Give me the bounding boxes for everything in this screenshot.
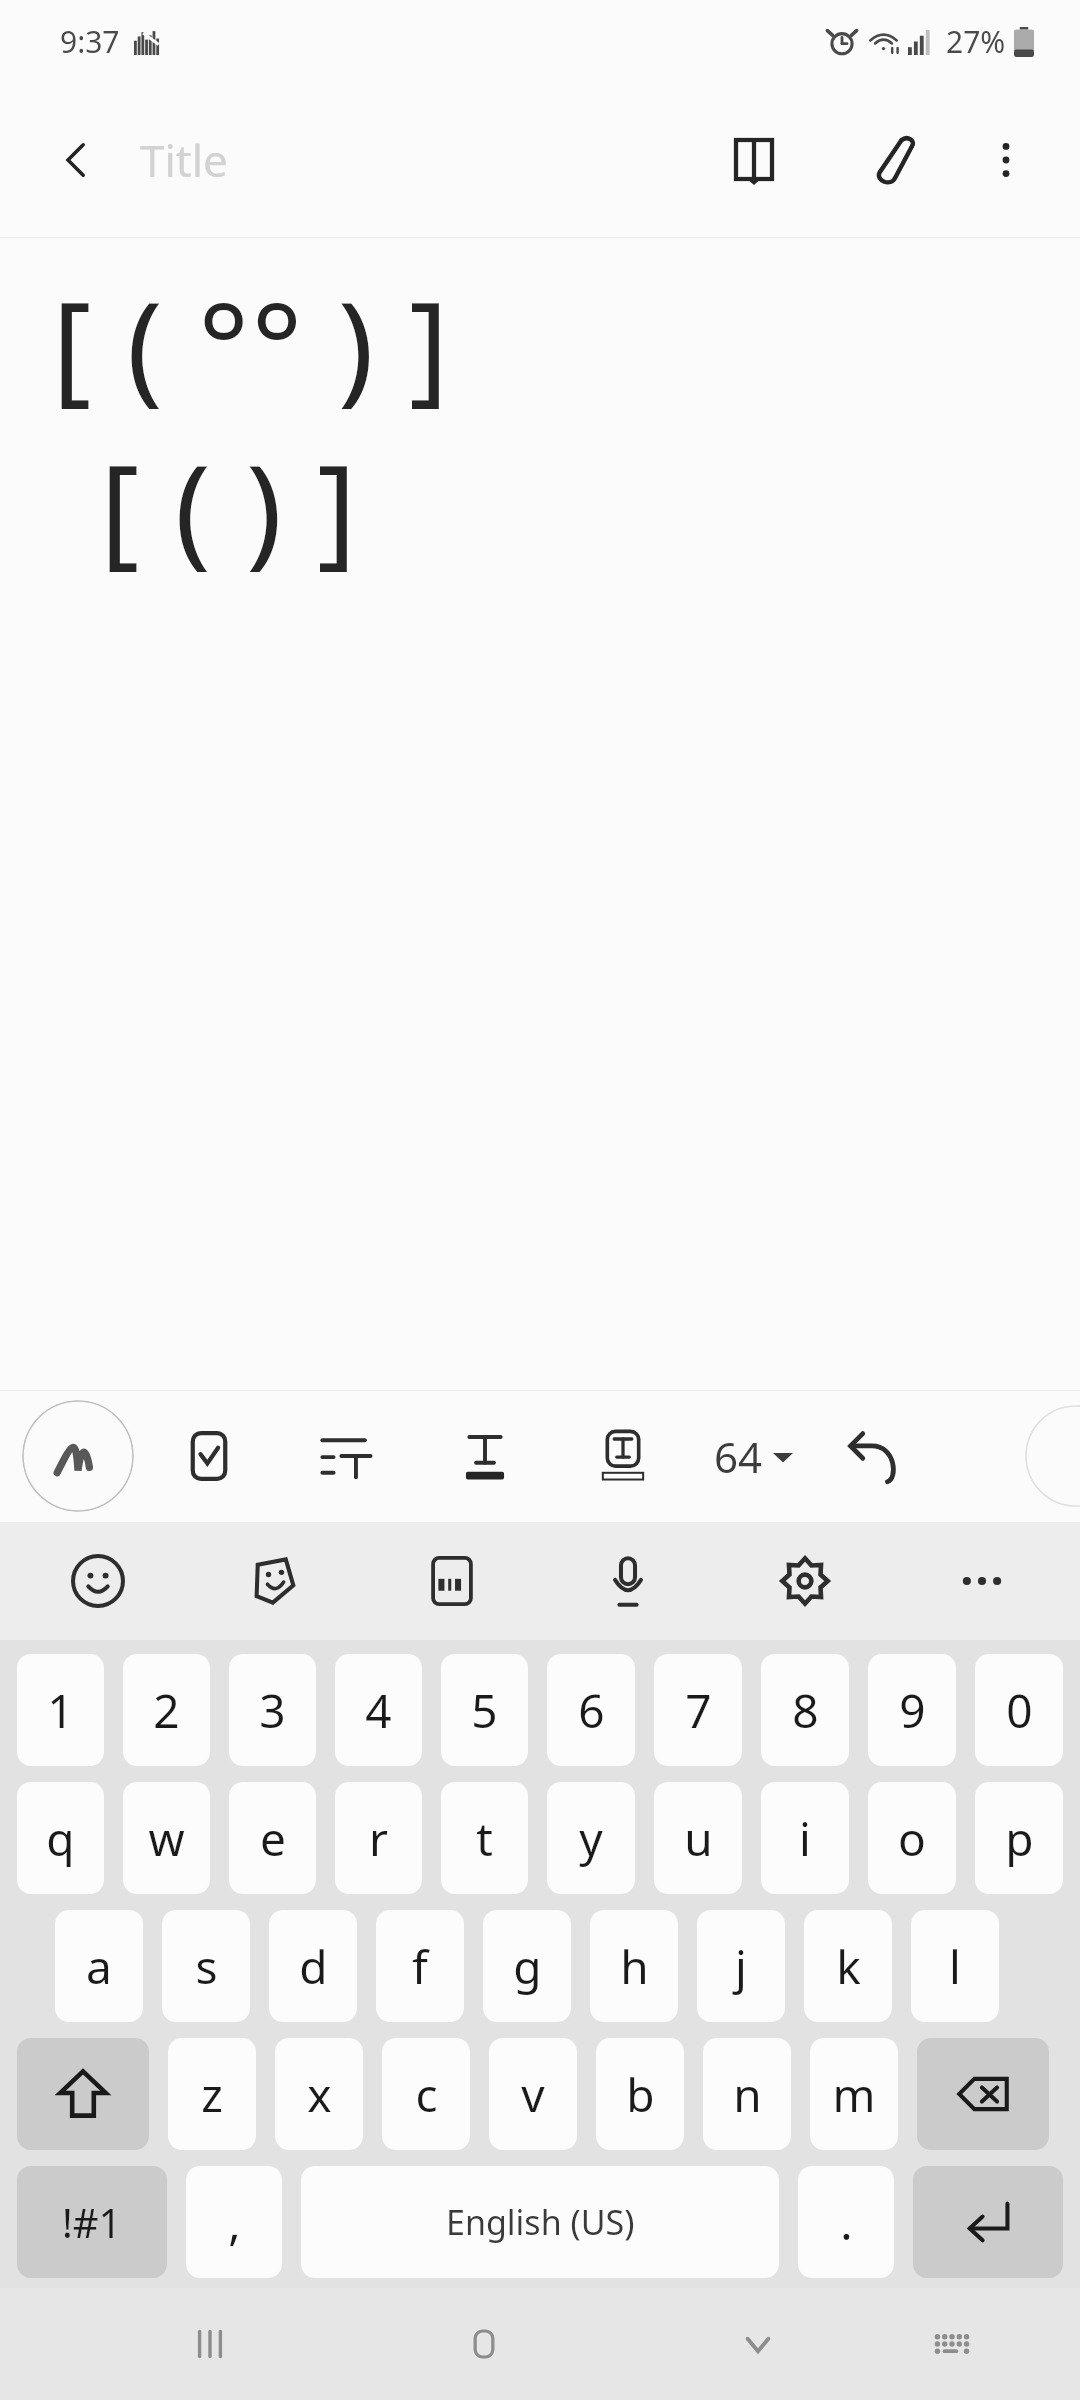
button[interactable]: Highlight — [580, 1413, 666, 1499]
button[interactable]: . — [798, 2166, 894, 2278]
button[interactable]: w — [123, 1782, 210, 1894]
button[interactable]: Reading mode — [708, 114, 800, 206]
staticText: , — [228, 2191, 241, 2254]
staticText: f — [412, 1935, 428, 1998]
button[interactable]: 9 — [868, 1654, 956, 1766]
staticText: [ ( °° ) ] — [52, 262, 451, 425]
staticText: u — [684, 1807, 713, 1870]
staticText: t — [476, 1807, 493, 1870]
button[interactable]: q — [17, 1782, 104, 1894]
button[interactable]: c — [382, 2038, 470, 2150]
button[interactable]: Handwriting — [22, 1400, 134, 1512]
button[interactable]: Home — [436, 2296, 532, 2392]
button[interactable]: More options — [966, 120, 1046, 200]
button[interactable]: Enter — [913, 2166, 1063, 2278]
staticText: 0 — [1006, 1679, 1033, 1742]
button[interactable]: GIF — [404, 1533, 500, 1629]
staticText: w — [148, 1807, 185, 1870]
button[interactable]: Paragraph style — [304, 1413, 390, 1499]
staticText: z — [201, 2063, 223, 2126]
button[interactable]: Voice input — [580, 1533, 676, 1629]
staticText: 7 — [685, 1679, 712, 1742]
button[interactable]: t — [441, 1782, 528, 1894]
button[interactable]: m — [810, 2038, 898, 2150]
staticText: 64 — [714, 1428, 763, 1485]
button[interactable]: Undo — [831, 1413, 917, 1499]
button[interactable]: More — [934, 1533, 1030, 1629]
staticText: m — [832, 2063, 876, 2126]
button[interactable]: e — [229, 1782, 316, 1894]
staticText: k — [836, 1935, 861, 1998]
button[interactable]: a — [55, 1910, 143, 2022]
staticText: 4 — [365, 1679, 392, 1742]
button[interactable]: y — [547, 1782, 635, 1894]
staticText: c — [415, 2063, 438, 2126]
button[interactable]: Hide keyboard — [710, 2296, 806, 2392]
button[interactable]: 7 — [654, 1654, 742, 1766]
staticText: b — [626, 2063, 655, 2126]
button[interactable]: d — [269, 1910, 357, 2022]
button[interactable]: u — [654, 1782, 742, 1894]
staticText: 9 — [899, 1679, 926, 1742]
staticText: [ ( ) ] — [100, 425, 359, 588]
button[interactable]: Stickers — [227, 1533, 323, 1629]
staticText: . — [840, 2191, 853, 2254]
button[interactable]: 4 — [335, 1654, 422, 1766]
button[interactable]: k — [804, 1910, 892, 2022]
staticText: h — [620, 1935, 649, 1998]
staticText: s — [195, 1935, 218, 1998]
button[interactable]: n — [703, 2038, 791, 2150]
staticText: 5 — [471, 1679, 498, 1742]
button[interactable]: z — [168, 2038, 256, 2150]
staticText: y — [579, 1807, 603, 1870]
button[interactable]: English (US) — [301, 2166, 779, 2278]
staticText: 9:37 — [60, 21, 120, 62]
button[interactable]: 5 — [441, 1654, 528, 1766]
button[interactable]: 1 — [17, 1654, 104, 1766]
button[interactable]: l — [911, 1910, 999, 2022]
button[interactable]: i — [761, 1782, 849, 1894]
staticText: g — [513, 1935, 542, 1998]
button[interactable]: j — [697, 1910, 785, 2022]
staticText: 8 — [792, 1679, 819, 1742]
button[interactable]: Recents — [162, 2296, 258, 2392]
button[interactable]: 8 — [761, 1654, 849, 1766]
button[interactable]: !#1 — [17, 2166, 167, 2278]
button[interactable]: Backspace — [917, 2038, 1049, 2150]
staticText: e — [260, 1807, 286, 1870]
staticText: q — [46, 1807, 75, 1870]
button[interactable]: Switch keyboard — [904, 2296, 1000, 2392]
button[interactable]: p — [975, 1782, 1063, 1894]
button[interactable]: s — [162, 1910, 250, 2022]
button[interactable]: 2 — [123, 1654, 210, 1766]
button[interactable]: 64 — [704, 1416, 803, 1497]
staticText: v — [521, 2063, 545, 2126]
button[interactable]: h — [590, 1910, 678, 2022]
button[interactable]: Checklist — [166, 1413, 252, 1499]
button[interactable]: Keyboard settings — [757, 1533, 853, 1629]
staticText: l — [949, 1935, 961, 1998]
staticText: r — [369, 1807, 388, 1870]
button[interactable]: v — [489, 2038, 577, 2150]
button[interactable]: r — [335, 1782, 422, 1894]
button[interactable]: x — [275, 2038, 363, 2150]
staticText: i — [799, 1807, 811, 1870]
button[interactable]: 6 — [547, 1654, 635, 1766]
button[interactable]: Text color — [442, 1413, 528, 1499]
staticText: 6 — [578, 1679, 605, 1742]
button[interactable]: Back — [34, 118, 118, 202]
button[interactable]: Shift — [17, 2038, 149, 2150]
button[interactable]: Emoji — [50, 1533, 146, 1629]
button[interactable]: , — [186, 2166, 282, 2278]
button[interactable]: o — [868, 1782, 956, 1894]
button[interactable]: 0 — [975, 1654, 1063, 1766]
button[interactable]: Attach — [844, 114, 936, 206]
staticText: 27% — [946, 21, 1006, 62]
staticText: 3 — [259, 1679, 286, 1742]
button[interactable]: f — [376, 1910, 464, 2022]
button[interactable]: g — [483, 1910, 571, 2022]
button[interactable]: 3 — [229, 1654, 316, 1766]
staticText: English (US) — [446, 2199, 635, 2245]
button[interactable]: b — [596, 2038, 684, 2150]
staticText: 2 — [153, 1679, 180, 1742]
